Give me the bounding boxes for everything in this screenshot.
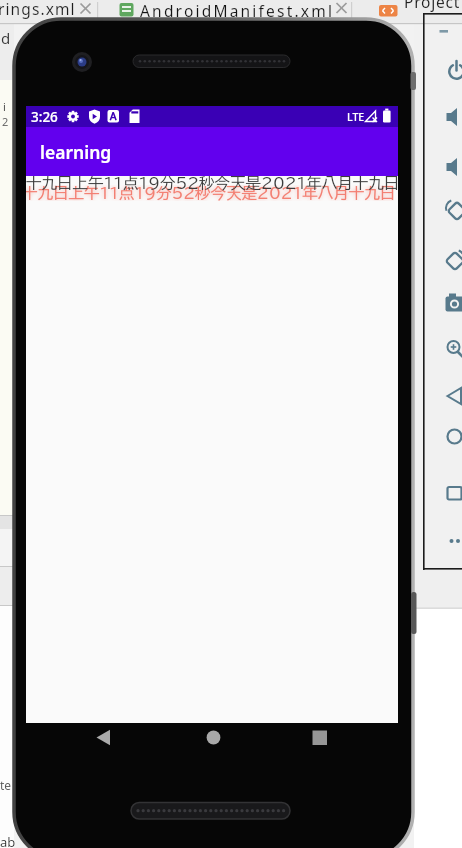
button[interactable]: [438, 56, 462, 86]
staticText: i: [3, 99, 6, 114]
button[interactable]: [438, 421, 462, 451]
staticText: ab: [0, 833, 16, 848]
staticText: learning: [40, 140, 112, 164]
button[interactable]: [438, 152, 462, 182]
button[interactable]: [303, 723, 337, 753]
staticText: AndroidManifest.xml: [140, 0, 335, 21]
button[interactable]: [438, 478, 462, 508]
button[interactable]: [438, 332, 462, 362]
staticText: 2: [2, 114, 9, 129]
button[interactable]: [438, 381, 462, 411]
button[interactable]: [395, 0, 462, 18]
button[interactable]: [438, 102, 462, 132]
staticText: 3:26: [31, 108, 58, 126]
button[interactable]: [438, 245, 462, 275]
button[interactable]: [198, 723, 230, 753]
button[interactable]: [0, 0, 97, 24]
staticText: te: [0, 777, 12, 793]
button[interactable]: [438, 526, 462, 556]
button[interactable]: [438, 195, 462, 225]
staticText: LTE: [347, 110, 365, 124]
button[interactable]: [88, 723, 122, 753]
staticText: rings.xml: [0, 0, 76, 19]
staticText: Project: [404, 0, 461, 12]
staticText: 十九日上午11点19分52秒今天是2021年八月十九日: [26, 175, 398, 191]
button[interactable]: [98, 0, 351, 24]
staticText: 十九日上午11点19分52秒今天是2021年八月十九日: [26, 185, 394, 201]
button[interactable]: [438, 289, 462, 319]
staticText: d: [1, 28, 11, 48]
